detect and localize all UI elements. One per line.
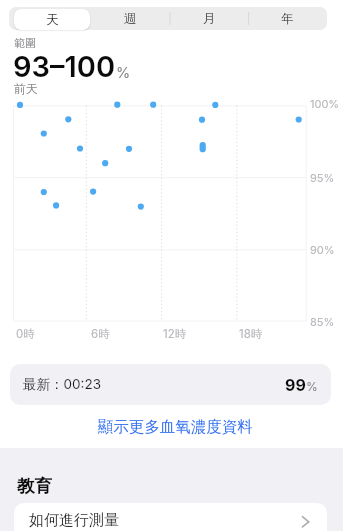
staticText: 18時 [239, 327, 263, 342]
staticText: % [116, 64, 131, 82]
staticText: 月 [203, 11, 216, 27]
staticText: 教育 [17, 475, 52, 497]
staticText: 最新：00:23 [23, 376, 101, 393]
staticText: 如何進行測量 [29, 511, 119, 530]
staticText: 93–100 [13, 49, 116, 84]
other: 如何進行測量 [301, 514, 310, 528]
button[interactable]: 如何進行測量 [14, 503, 327, 531]
staticText: 90% [310, 243, 335, 256]
staticText: 12時 [163, 327, 187, 342]
staticText: 天 [46, 12, 59, 28]
button[interactable]: 最新：00:23 [10, 364, 331, 405]
button[interactable]: 顯示更多血氧濃度資料 [4, 414, 343, 440]
staticText: 顯示更多血氧濃度資料 [98, 417, 253, 437]
staticText: 前天 [14, 81, 38, 96]
button[interactable]: 月 [170, 7, 249, 30]
button[interactable]: 年 [248, 7, 327, 30]
staticText: 85% [310, 315, 335, 328]
button[interactable]: 週 [91, 7, 170, 30]
staticText: 範圍 [14, 36, 36, 50]
staticText: 週 [124, 11, 137, 27]
staticText: 年 [281, 11, 294, 27]
staticText: 95% [310, 171, 335, 184]
staticText: 6時 [91, 327, 110, 342]
staticText: 0時 [16, 327, 35, 342]
button[interactable]: 天 [14, 9, 90, 30]
staticText: 99 [285, 375, 306, 394]
staticText: 100% [310, 97, 340, 110]
staticText: % [306, 379, 318, 394]
